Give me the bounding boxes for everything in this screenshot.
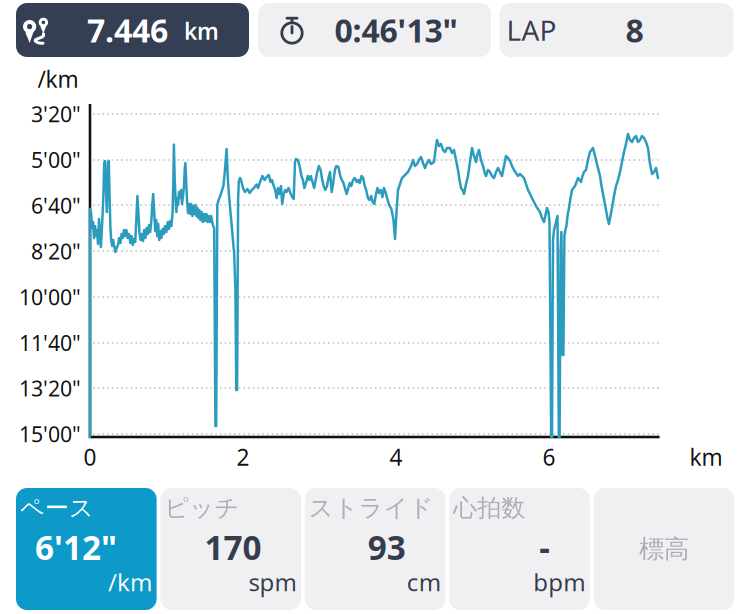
button[interactable]: ペース (16, 488, 157, 610)
staticText: 11'40" (19, 328, 81, 357)
staticText: - (539, 525, 550, 569)
staticText: km (184, 16, 219, 46)
staticText: 6'40" (31, 191, 81, 220)
staticText: cm (407, 566, 441, 598)
staticText: 10'00" (19, 283, 81, 311)
staticText: 7.446 (87, 9, 168, 51)
staticText: LAP (506, 11, 556, 49)
staticText: /km (37, 64, 78, 94)
staticText: 93 (368, 525, 406, 569)
button[interactable]: ストライド (305, 488, 445, 610)
staticText: 13'20" (19, 374, 81, 402)
staticText: bpm (533, 566, 585, 598)
staticText: 標高 (639, 533, 689, 564)
staticText: 0:46'13" (334, 9, 457, 51)
staticText: 8'20" (31, 237, 81, 265)
staticText: 6'12" (35, 525, 117, 569)
staticText: 170 (204, 525, 261, 569)
staticText: 4 (389, 442, 402, 472)
button[interactable]: 7.446 (16, 3, 249, 57)
staticText: /km (108, 566, 152, 598)
staticText: 15'00" (19, 420, 81, 448)
staticText: ペース (20, 493, 94, 523)
staticText: ピッチ (164, 493, 239, 523)
button[interactable]: 0:46'13" (258, 3, 491, 57)
button[interactable]: 心拍数 (449, 488, 590, 610)
staticText: 6 (542, 442, 555, 472)
staticText: 0 (83, 442, 96, 472)
staticText: 心拍数 (453, 493, 525, 523)
staticText: spm (248, 566, 296, 598)
staticText: ストライド (309, 493, 434, 523)
staticText: 5'00" (31, 146, 81, 174)
button[interactable]: LAP (499, 3, 733, 57)
button[interactable]: 標高 (594, 488, 734, 610)
button[interactable]: ピッチ (160, 488, 301, 610)
staticText: 2 (236, 442, 249, 472)
staticText: 8 (625, 9, 643, 51)
staticText: km (689, 442, 722, 472)
staticText: 3'20" (31, 100, 81, 128)
